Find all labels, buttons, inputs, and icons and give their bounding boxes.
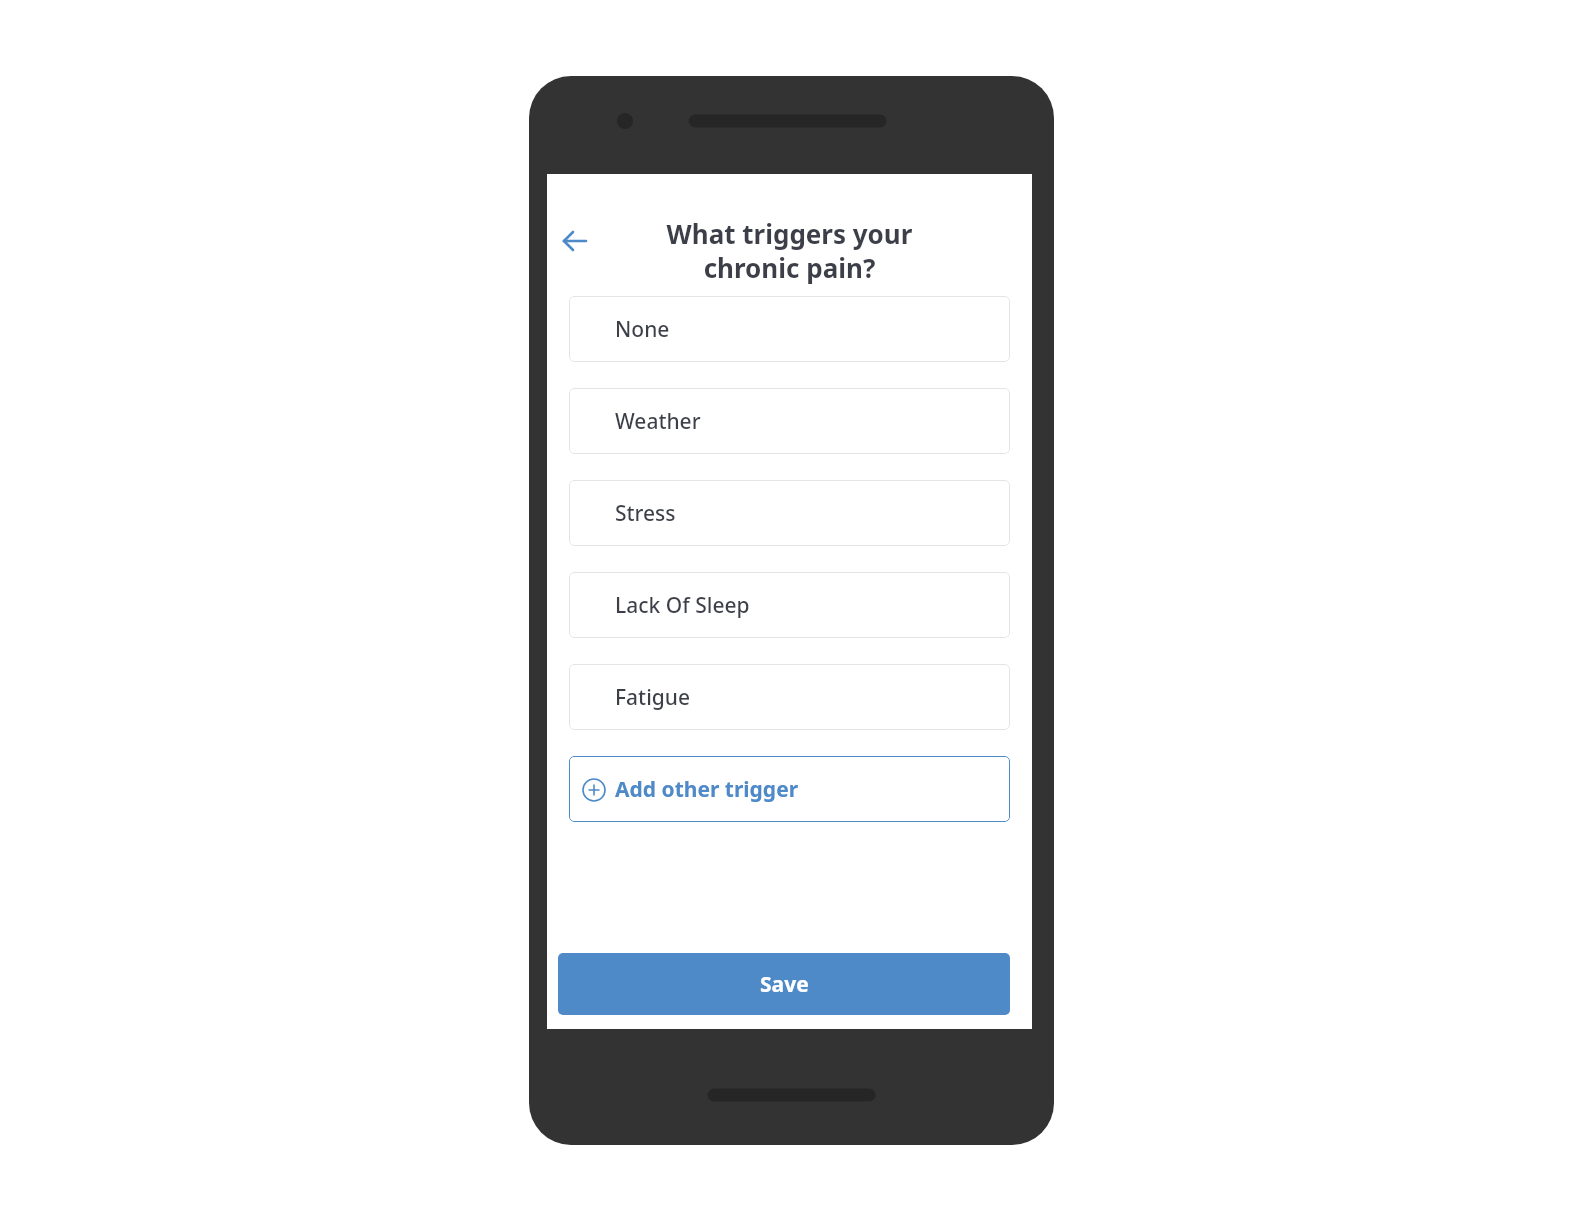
staticText: Stress [615,499,676,528]
staticText: Add other trigger [615,775,799,804]
button[interactable]: Add other trigger [569,756,1010,822]
button[interactable]: Fatigue [569,664,1010,730]
staticText: Fatigue [615,683,691,712]
staticText: What triggers your chronic pain? [547,216,1032,285]
button[interactable]: Stress [569,480,1010,546]
staticText: None [615,315,670,344]
button[interactable]: Back [553,219,597,263]
button[interactable]: Lack Of Sleep [569,572,1010,638]
button[interactable]: Weather [569,388,1010,454]
button[interactable]: None [569,296,1010,362]
staticText: Save [760,970,809,999]
staticText: Lack Of Sleep [615,591,750,620]
button[interactable]: Save [558,953,1010,1015]
staticText: Weather [615,407,701,436]
